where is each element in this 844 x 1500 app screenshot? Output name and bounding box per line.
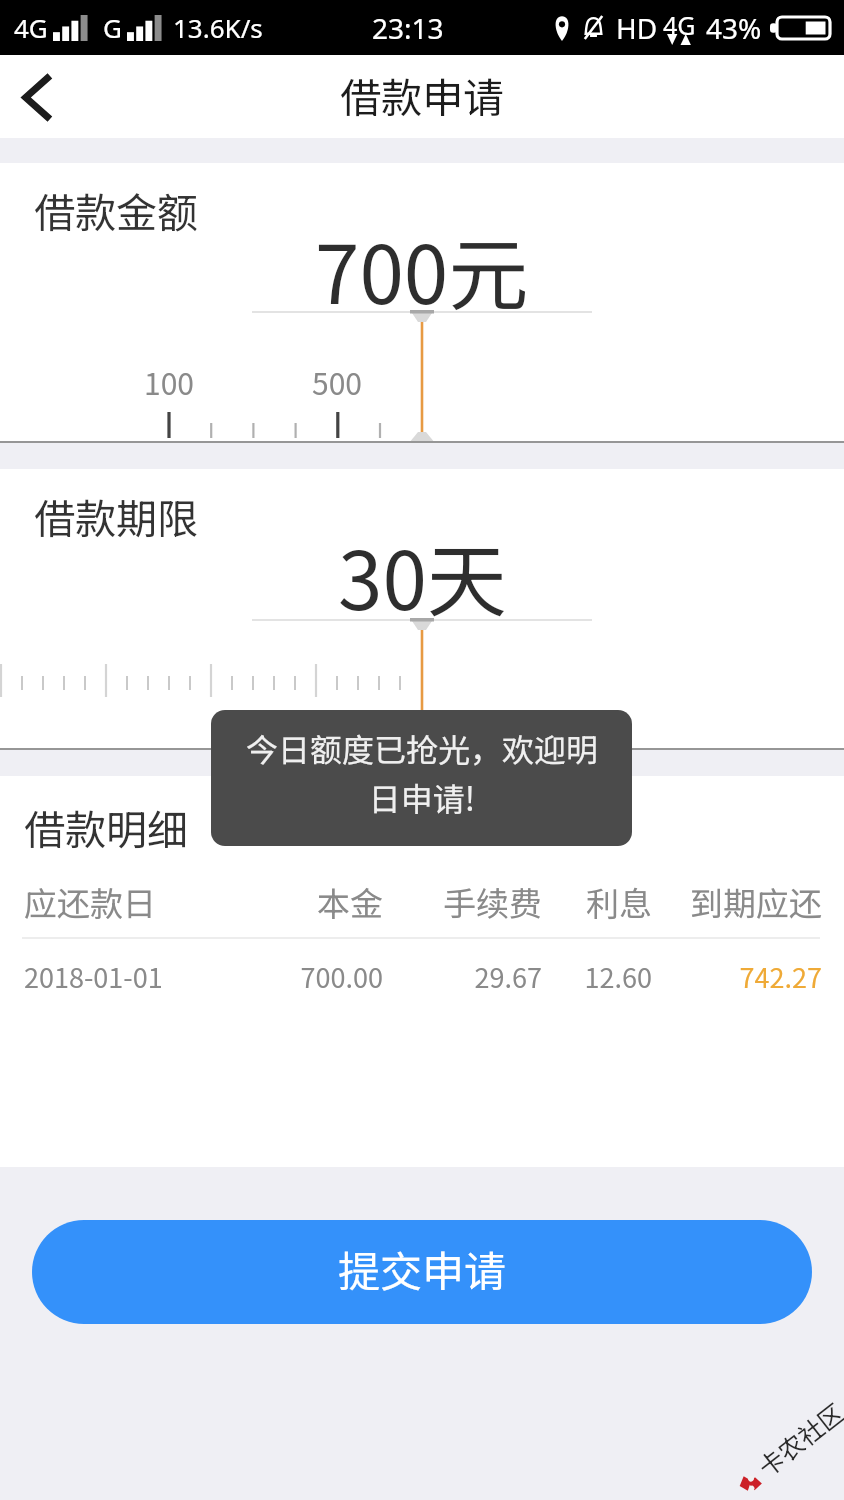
staticText: 提交申请: [338, 1238, 507, 1299]
staticText: 借款申请: [340, 65, 504, 124]
staticText: 手续费: [242, 878, 542, 926]
button[interactable]: Back: [0, 61, 74, 133]
staticText: 本金: [83, 878, 383, 926]
staticText: 今日额度已抢光，欢迎明日申请!: [242, 725, 602, 820]
staticText: 500: [312, 360, 362, 403]
staticText: G: [103, 10, 122, 45]
staticText: 29.67: [242, 957, 542, 996]
staticText: 30天: [338, 517, 507, 633]
staticText: HD: [616, 9, 658, 47]
staticText: 到期应还: [522, 878, 822, 926]
staticText: 13.6K/s: [173, 10, 263, 45]
staticText: 700元: [315, 211, 529, 327]
staticText: 100: [144, 360, 194, 403]
staticText: 4G: [14, 10, 48, 45]
staticText: 4G1: [663, 8, 699, 42]
staticText: 卡农社区: [750, 1393, 844, 1484]
staticText: 43%: [706, 9, 762, 47]
staticText: 借款期限: [34, 486, 198, 545]
staticText: 借款明细: [24, 797, 188, 856]
staticText: 23:13: [372, 9, 444, 47]
staticText: 742.27: [522, 957, 822, 996]
staticText: 2018-01-01: [24, 957, 163, 996]
staticText: 利息: [352, 878, 652, 926]
staticText: 借款金额: [34, 180, 198, 239]
staticText: 700.00: [83, 957, 383, 996]
staticText: 应还款日: [24, 878, 156, 926]
staticText: 12.60: [352, 957, 652, 996]
button[interactable]: 提交申请: [32, 1220, 812, 1324]
